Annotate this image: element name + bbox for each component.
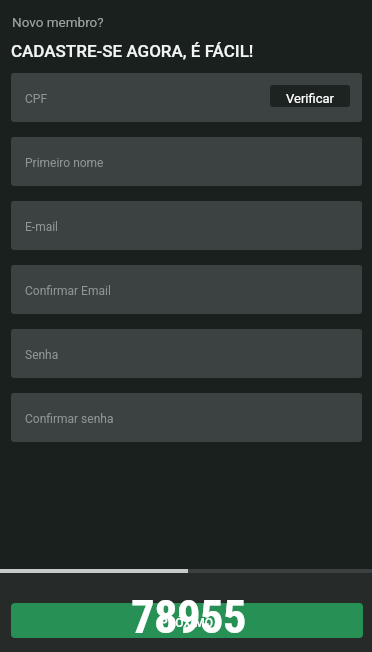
- staticText: PRÓXIMO: [160, 616, 214, 630]
- staticText: Verificar: [286, 91, 334, 106]
- button[interactable]: E-mail: [11, 201, 362, 250]
- button[interactable]: Verificar: [270, 85, 350, 107]
- staticText: 78955: [131, 589, 246, 644]
- staticText: Senha: [25, 348, 59, 362]
- staticText: Novo membro?: [12, 14, 104, 30]
- staticText: Confirmar Email: [25, 284, 111, 298]
- button[interactable]: Confirmar senha: [11, 393, 362, 442]
- staticText: CADASTRE-SE AGORA, É FÁCIL!: [11, 41, 254, 61]
- button[interactable]: Primeiro nome: [11, 137, 362, 186]
- staticText: CPF: [25, 92, 48, 106]
- button[interactable]: Senha: [11, 329, 362, 378]
- staticText: Primeiro nome: [25, 156, 104, 170]
- staticText: E-mail: [25, 220, 59, 234]
- button[interactable]: PRÓXIMO: [11, 603, 363, 638]
- button[interactable]: CPF: [11, 73, 362, 122]
- button[interactable]: Confirmar Email: [11, 265, 362, 314]
- staticText: Confirmar senha: [25, 412, 114, 426]
